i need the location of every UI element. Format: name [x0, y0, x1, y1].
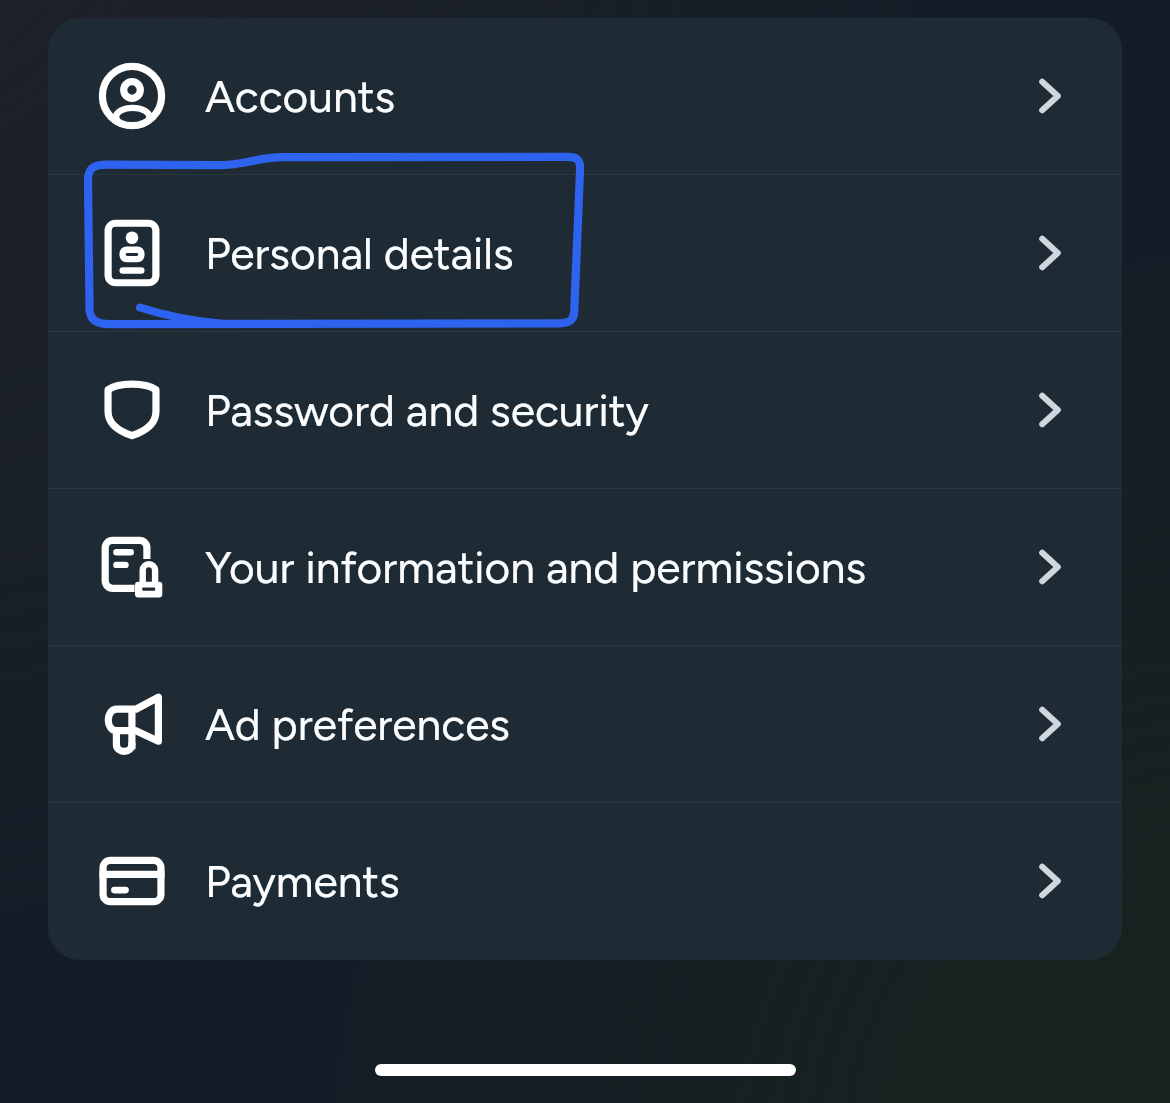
staticText: Your information and permissions: [205, 541, 867, 594]
button[interactable]: Payments: [48, 803, 1122, 959]
button[interactable]: Your information and permissions: [48, 489, 1122, 645]
button[interactable]: Password and security: [48, 332, 1122, 488]
button[interactable]: Accounts: [48, 18, 1122, 174]
staticText: Payments: [205, 855, 400, 908]
other: Open Ad preferences: [1023, 697, 1077, 751]
button[interactable]: Ad preferences: [48, 646, 1122, 802]
button[interactable]: Personal details: [48, 175, 1122, 331]
staticText: Personal details: [205, 227, 514, 280]
other: Open Personal details: [1023, 226, 1077, 280]
staticText: Ad preferences: [205, 698, 510, 751]
other: Open Accounts: [1023, 69, 1077, 123]
other: Open Password and security: [1023, 383, 1077, 437]
other: Open Your information and permissions: [1023, 540, 1077, 594]
staticText: Accounts: [205, 70, 396, 123]
other: Open Payments: [1023, 854, 1077, 908]
staticText: Password and security: [205, 384, 649, 437]
